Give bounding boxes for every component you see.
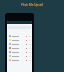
button[interactable] bbox=[7, 42, 32, 46]
staticText: Pitch Me Upsell bbox=[0, 3, 64, 7]
button[interactable] bbox=[7, 50, 32, 54]
button[interactable] bbox=[7, 46, 32, 50]
button[interactable] bbox=[7, 34, 32, 38]
button[interactable] bbox=[7, 58, 32, 62]
button[interactable] bbox=[7, 38, 32, 42]
button[interactable] bbox=[7, 54, 32, 58]
